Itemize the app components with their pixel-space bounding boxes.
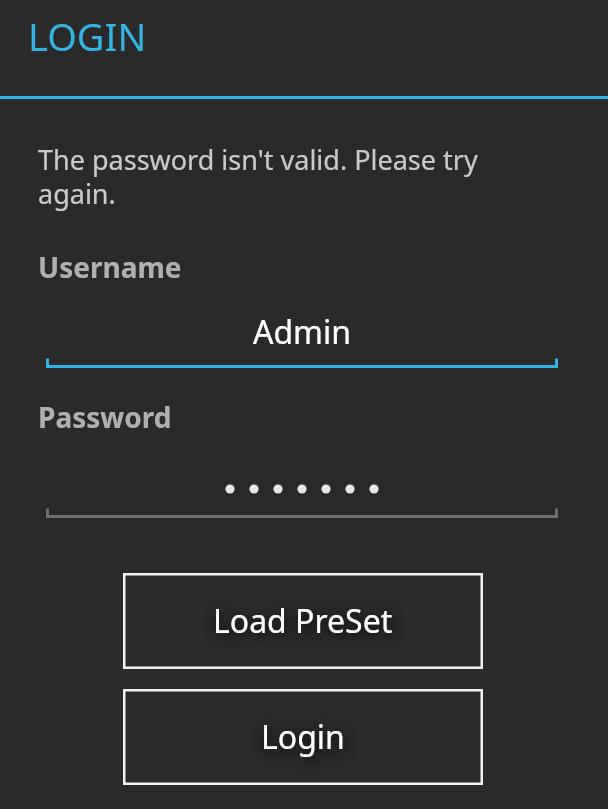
staticText: Password	[38, 398, 172, 436]
staticText: Load PreSet	[213, 599, 393, 643]
staticText: LOGIN	[28, 10, 147, 62]
button[interactable]: Username input	[46, 310, 558, 368]
staticText: Username	[38, 248, 182, 286]
staticText: The password isn't valid. Please try aga…	[38, 141, 508, 212]
button[interactable]: Password input	[46, 460, 558, 518]
button[interactable]: Login	[123, 689, 483, 785]
staticText: Login	[261, 715, 345, 759]
staticText: Admin	[46, 310, 558, 354]
button[interactable]: Load PreSet	[123, 573, 483, 669]
